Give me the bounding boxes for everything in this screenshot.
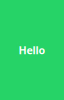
staticText: Hello: [18, 43, 45, 57]
